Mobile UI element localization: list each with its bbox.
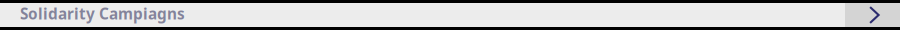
staticText: Solidarity Campiagns	[20, 3, 185, 24]
button[interactable]: Solidarity Campiagns	[0, 3, 845, 27]
button[interactable]: Show more solidarity campaigns	[845, 3, 900, 27]
